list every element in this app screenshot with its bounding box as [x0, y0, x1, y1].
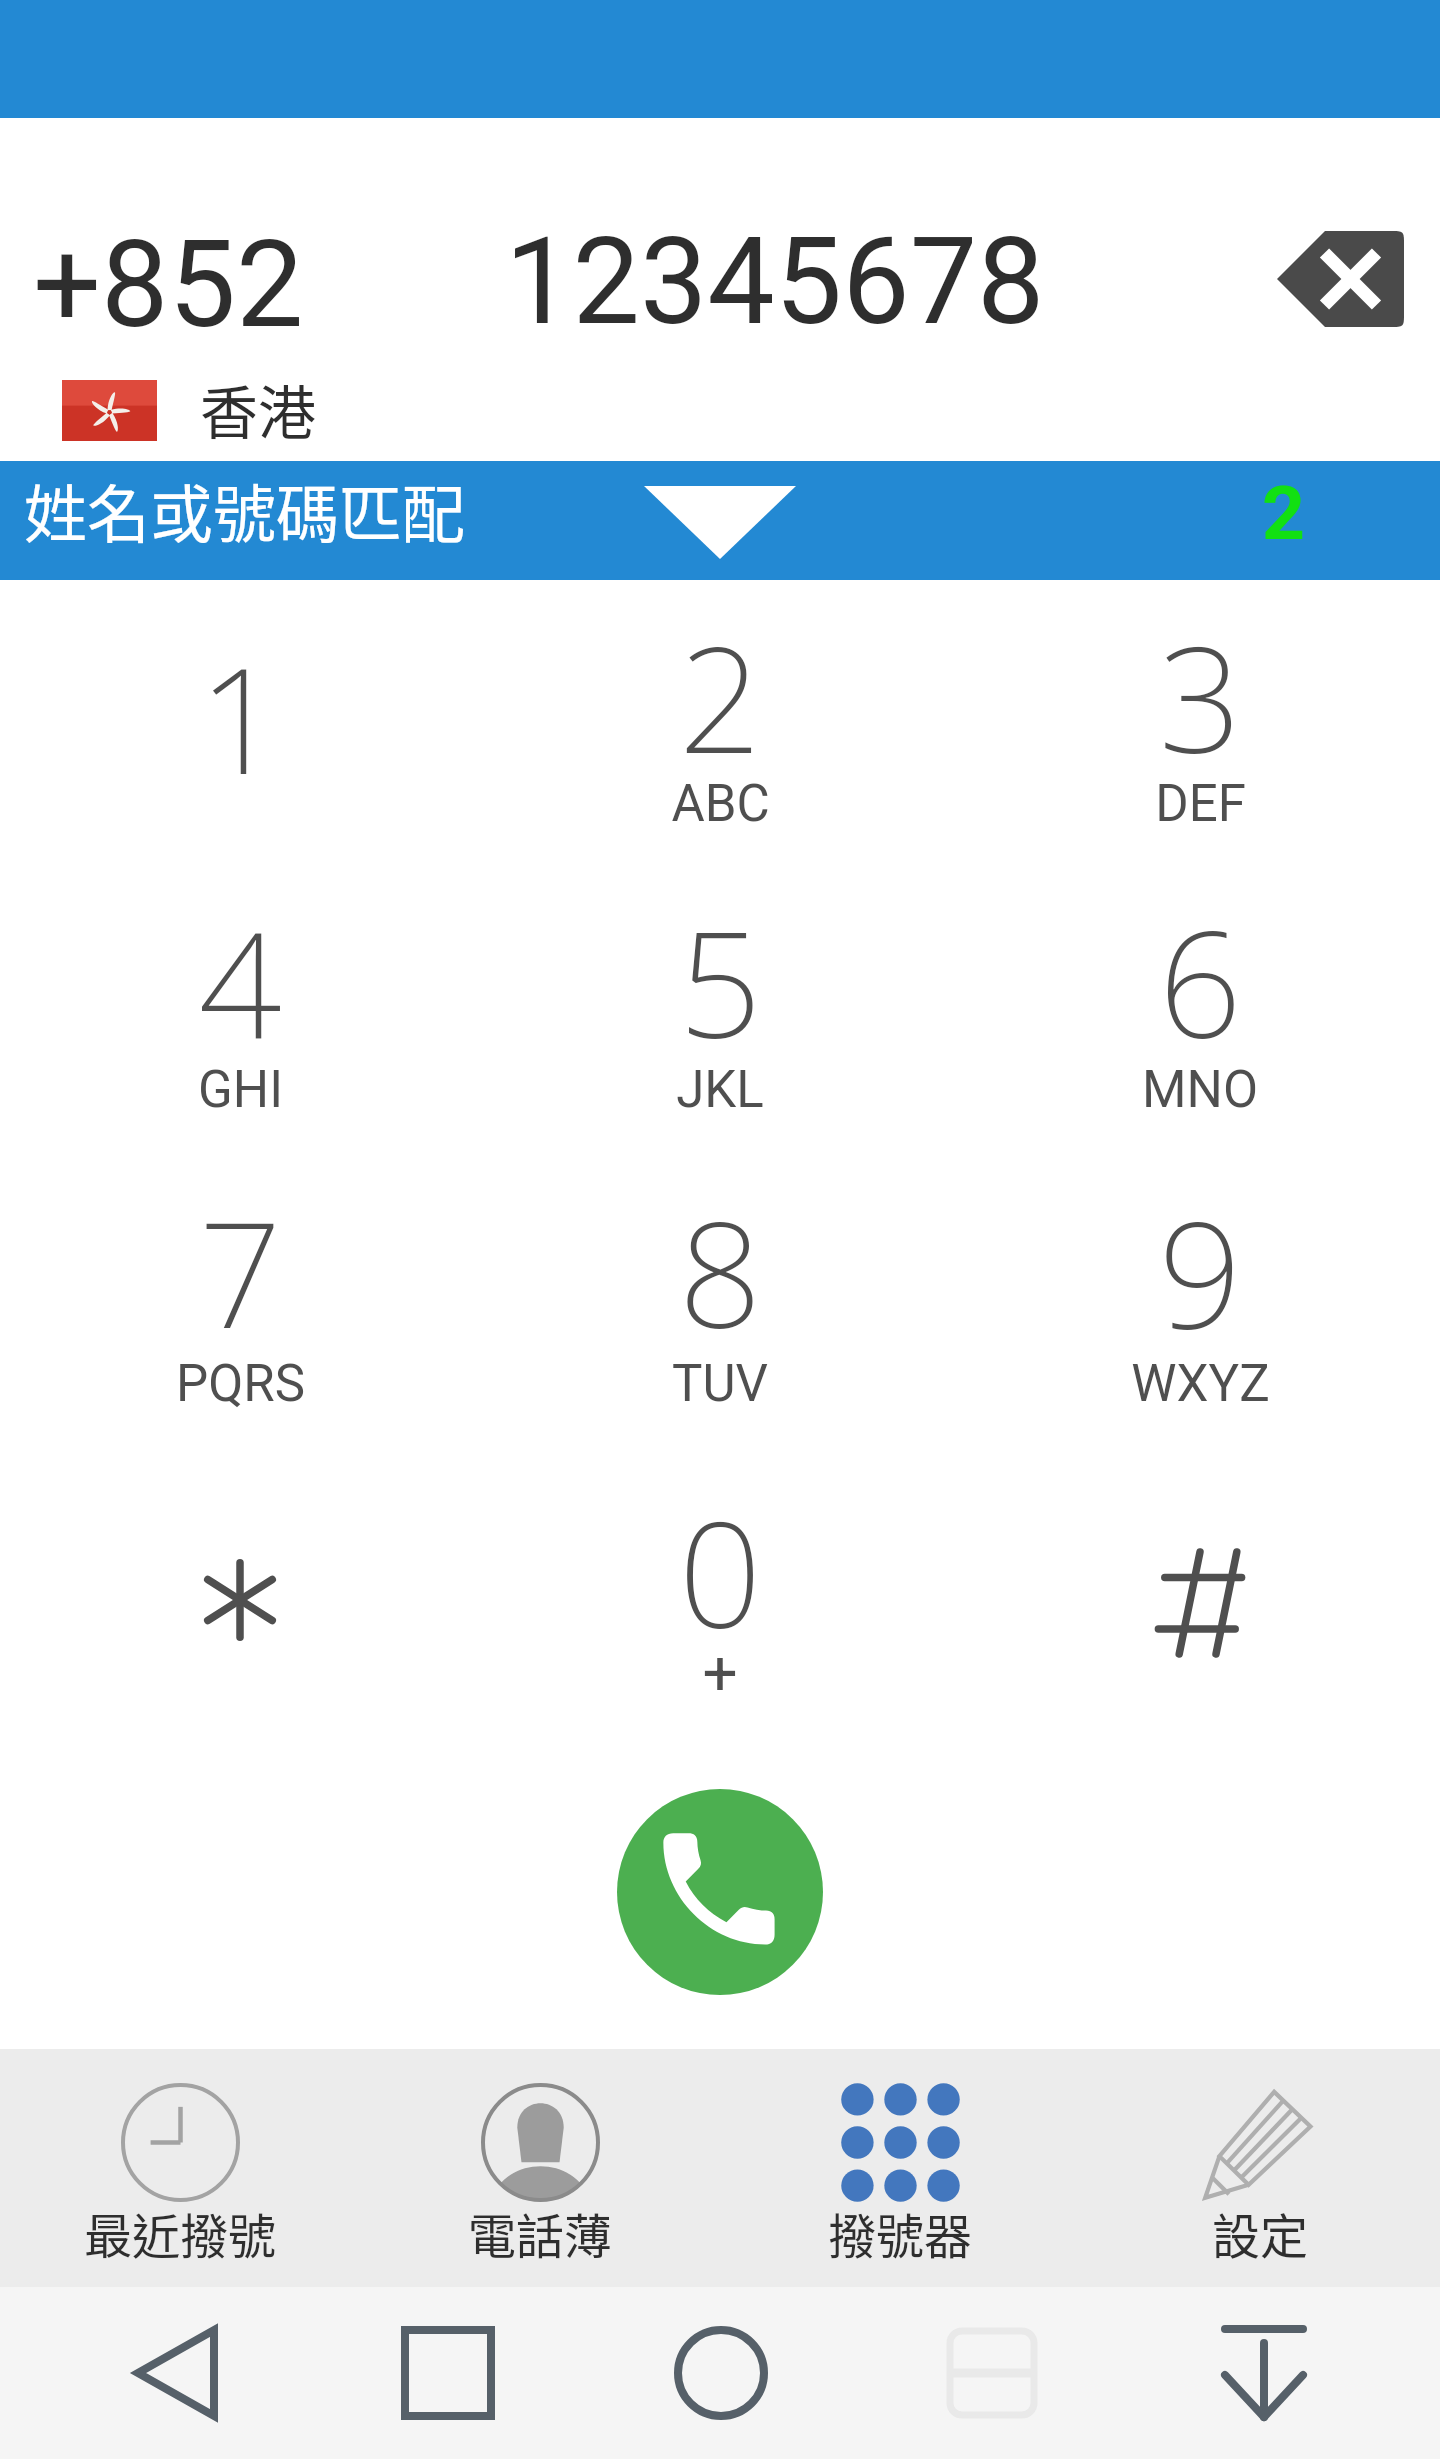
button[interactable]: Home — [635, 2287, 807, 2459]
staticText: 0 — [678, 1472, 762, 1652]
staticText: 電話薄 — [468, 2198, 613, 2268]
button[interactable] — [960, 1460, 1440, 1745]
button[interactable]: 姓名或號碼匹配 — [0, 461, 1440, 580]
staticText: 2 — [1262, 469, 1306, 557]
button[interactable]: 設定 — [1080, 2049, 1440, 2287]
staticText: ABC — [671, 774, 770, 834]
button[interactable]: 撥號器 — [720, 2049, 1080, 2287]
staticText: 香港 — [200, 367, 317, 451]
staticText: 3 — [1158, 597, 1242, 777]
staticText: GHI — [198, 1060, 283, 1120]
button[interactable]: Hide navigation bar — [1178, 2287, 1350, 2459]
staticText: TUV — [672, 1354, 768, 1414]
staticText: + — [702, 1636, 738, 1709]
button[interactable]: 最近撥號 — [0, 2049, 360, 2287]
button[interactable] — [0, 1160, 480, 1445]
staticText: 4 — [198, 882, 282, 1062]
button[interactable] — [480, 1160, 960, 1445]
button[interactable] — [480, 585, 960, 870]
button[interactable] — [960, 1160, 1440, 1445]
staticText: +852 — [33, 215, 304, 356]
staticText: JKL — [676, 1060, 764, 1120]
button[interactable] — [960, 585, 1440, 870]
button[interactable] — [480, 1460, 960, 1745]
staticText: 12345678 — [505, 212, 1045, 353]
staticText: 2 — [678, 597, 762, 777]
button[interactable]: Recent apps — [362, 2287, 534, 2459]
staticText: 6 — [1158, 882, 1242, 1062]
button[interactable]: Backspace — [1262, 219, 1422, 339]
staticText: PQRS — [176, 1354, 305, 1414]
staticText: 7 — [198, 1172, 282, 1352]
button[interactable]: Split screen — [906, 2287, 1078, 2459]
staticText: 最近撥號 — [84, 2198, 277, 2268]
button[interactable] — [0, 1460, 480, 1745]
button[interactable] — [480, 870, 960, 1155]
staticText: 1 — [198, 618, 282, 798]
staticText: 姓名或號碼匹配 — [24, 464, 465, 555]
button[interactable] — [0, 870, 480, 1155]
staticText: 撥號器 — [828, 2198, 973, 2268]
staticText: 8 — [678, 1172, 762, 1352]
staticText: MNO — [1142, 1060, 1258, 1120]
button[interactable]: 電話薄 — [360, 2049, 720, 2287]
button[interactable]: Back — [90, 2287, 262, 2459]
button[interactable] — [0, 585, 480, 870]
staticText: 5 — [678, 882, 762, 1062]
button[interactable] — [960, 870, 1440, 1155]
staticText: 設定 — [1212, 2198, 1309, 2268]
staticText: WXYZ — [1131, 1354, 1270, 1414]
button[interactable]: Call — [617, 1789, 823, 1995]
staticText: 9 — [1158, 1172, 1242, 1352]
staticText: DEF — [1155, 774, 1246, 834]
